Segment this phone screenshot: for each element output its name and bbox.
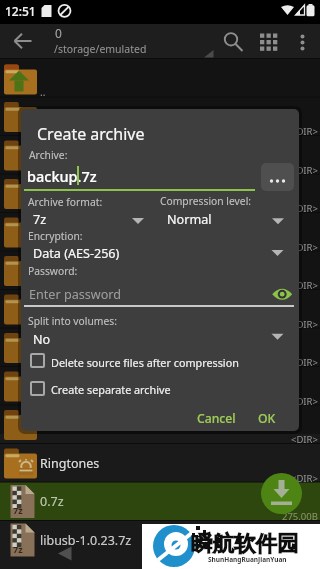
- button[interactable]: backup.7z: [27, 163, 320, 189]
- button[interactable]: [249, 403, 291, 432]
- button[interactable]: [0, 367, 320, 406]
- button[interactable]: No: [33, 326, 320, 352]
- staticText: Archive format:: [28, 195, 103, 209]
- staticText: Data (AES-256): [33, 245, 120, 262]
- staticText: 7z: [33, 211, 47, 228]
- staticText: <DIR>: [291, 395, 318, 408]
- staticText: <DIR>: [291, 356, 318, 369]
- button[interactable]: [0, 59, 320, 98]
- staticText: Enter password: [29, 286, 121, 303]
- button[interactable]: [288, 26, 318, 56]
- staticText: OK: [258, 410, 276, 427]
- staticText: Compression level:: [160, 194, 252, 208]
- button[interactable]: [0, 136, 320, 175]
- button[interactable]: [0, 444, 320, 483]
- button[interactable]: Enter password: [29, 281, 320, 307]
- button[interactable]: [261, 473, 302, 514]
- button[interactable]: Data (AES-256): [33, 240, 320, 266]
- button[interactable]: [0, 97, 320, 136]
- staticText: ..: [40, 85, 46, 99]
- staticText: 0: [55, 25, 62, 41]
- button[interactable]: [30, 353, 45, 368]
- staticText: libusb-1.0.23.7z: [40, 532, 132, 549]
- button[interactable]: [0, 174, 320, 213]
- staticText: Encryption:: [28, 229, 83, 243]
- button[interactable]: [186, 403, 244, 432]
- staticText: Archive:: [29, 148, 68, 162]
- staticText: Cancel: [197, 410, 236, 427]
- staticText: Create archive: [37, 123, 145, 145]
- staticText: <DIR>: [291, 202, 318, 215]
- button[interactable]: [0, 213, 320, 252]
- staticText: 12:51: [5, 3, 36, 19]
- staticText: Password:: [28, 264, 78, 278]
- staticText: /storage/emulated: [54, 42, 147, 56]
- button[interactable]: [0, 405, 320, 444]
- staticText: <DIR>: [291, 279, 318, 292]
- button[interactable]: [0, 521, 320, 560]
- button[interactable]: [0, 328, 320, 367]
- button[interactable]: [6, 26, 40, 56]
- button[interactable]: [261, 163, 294, 191]
- button[interactable]: Normal: [167, 206, 320, 232]
- staticText: 瞬航软件园: [191, 530, 299, 556]
- button[interactable]: [0, 290, 320, 329]
- staticText: No: [33, 331, 51, 348]
- staticText: 7z: [13, 543, 23, 555]
- button[interactable]: [0, 251, 320, 290]
- staticText: <DIR>: [291, 472, 318, 485]
- button[interactable]: [262, 282, 298, 308]
- staticText: 7z: [13, 504, 23, 516]
- staticText: Normal: [167, 211, 212, 228]
- staticText: backup.7z: [27, 166, 97, 186]
- button[interactable]: OK: [258, 405, 320, 431]
- staticText: 0.7z: [40, 493, 64, 510]
- button[interactable]: Cancel: [197, 405, 320, 431]
- staticText: <DIR>: [291, 433, 318, 446]
- staticText: Create separate archive: [51, 382, 171, 397]
- button[interactable]: [216, 26, 248, 56]
- staticText: Split into volumes:: [28, 314, 117, 328]
- button[interactable]: [40, 540, 100, 569]
- button[interactable]: [0, 482, 320, 521]
- staticText: ShunHangRuanJianYuan: [208, 555, 287, 564]
- staticText: Delete source files after compression: [51, 355, 239, 370]
- staticText: Ringtones: [40, 455, 100, 472]
- staticText: <DIR>: [291, 318, 318, 331]
- staticText: <DIR>: [291, 241, 318, 254]
- staticText: <DIR>: [291, 125, 318, 138]
- button[interactable]: [252, 26, 284, 56]
- button[interactable]: [30, 381, 45, 396]
- staticText: <DIR>: [291, 164, 318, 177]
- button[interactable]: 7z: [33, 206, 320, 232]
- staticText: 275.00B: [282, 510, 318, 523]
